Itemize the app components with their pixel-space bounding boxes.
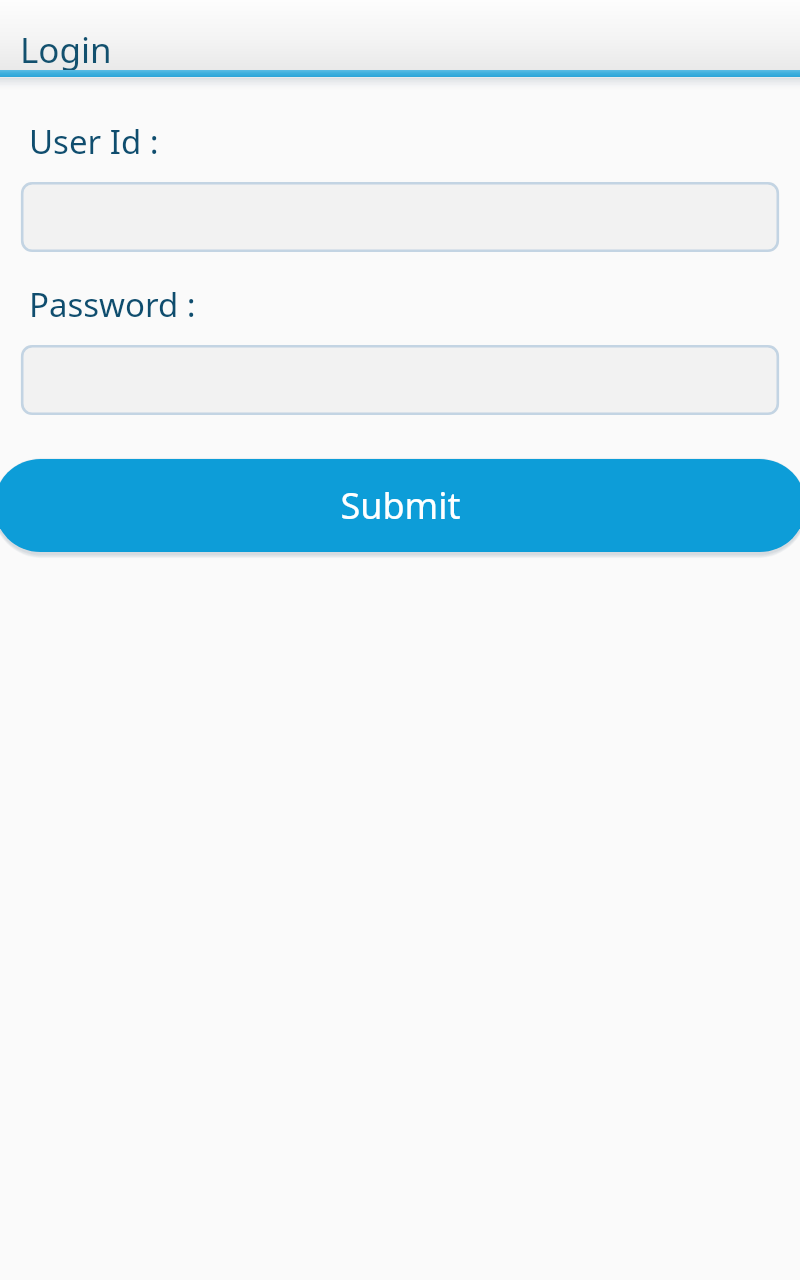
staticText: User Id : — [29, 119, 159, 164]
button[interactable] — [21, 345, 779, 415]
staticText: Submit — [340, 481, 461, 530]
button[interactable]: Submit — [0, 459, 800, 552]
staticText: Password : — [29, 282, 196, 327]
button[interactable] — [21, 182, 779, 252]
staticText: Login — [20, 26, 112, 74]
